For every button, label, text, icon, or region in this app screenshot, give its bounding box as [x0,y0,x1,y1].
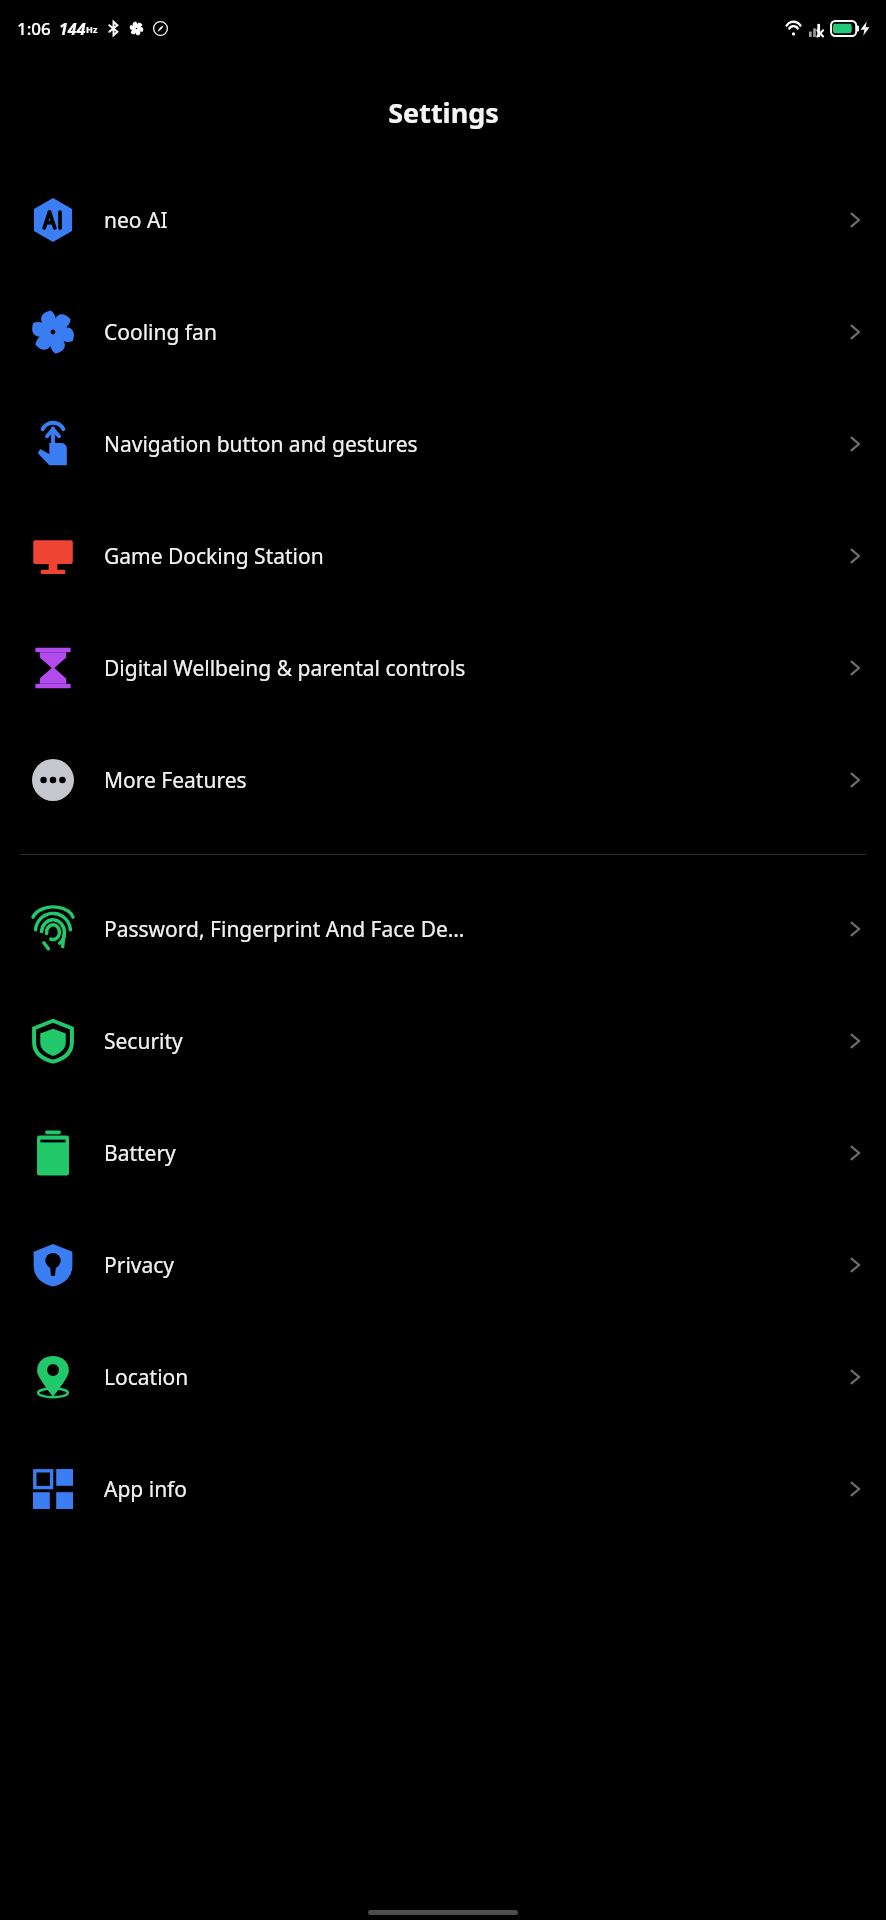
staticText: Battery [104,1139,834,1168]
staticText: Digital Wellbeing & parental controls [104,654,834,683]
other: Open Privacy [844,1254,866,1276]
button[interactable]: Navigation button and gestures [0,388,886,500]
staticText: Hz [86,23,98,35]
staticText: 1:06 [17,17,51,40]
staticText: Privacy [104,1251,834,1280]
other: Open Password, Fingerprint And Face De… [844,918,866,940]
other: Open More Features [844,769,866,791]
other: Open neo AI [844,209,866,231]
button[interactable]: App info [0,1433,886,1545]
staticText: Game Docking Station [104,542,834,571]
other: Open Cooling fan [844,321,866,343]
button[interactable]: Game Docking Station [0,500,886,612]
button[interactable]: Digital Wellbeing & parental controls [0,612,886,724]
other: Open Game Docking Station [844,545,866,567]
other: Open App info [844,1478,866,1500]
staticText: Navigation button and gestures [104,430,834,459]
button[interactable]: Security [0,985,886,1097]
staticText: 144 [59,18,86,40]
button[interactable]: Password, Fingerprint And Face De… [0,873,886,985]
other: Open Navigation button and gestures [844,433,866,455]
button[interactable]: More Features [0,724,886,836]
staticText: Settings [388,94,499,131]
staticText: Security [104,1027,834,1056]
staticText: App info [104,1475,834,1504]
staticText: More Features [104,766,834,795]
other: Open Location [844,1366,866,1388]
button[interactable]: neo AI [0,164,886,276]
button[interactable]: Battery [0,1097,886,1209]
button[interactable]: Cooling fan [0,276,886,388]
button[interactable]: Privacy [0,1209,886,1321]
staticText: Password, Fingerprint And Face De… [104,915,834,944]
other: Open Battery [844,1142,866,1164]
other: Open Security [844,1030,866,1052]
button[interactable]: Location [0,1321,886,1433]
staticText: neo AI [104,206,834,235]
other: Open Digital Wellbeing & parental contro… [844,657,866,679]
staticText: Location [104,1363,834,1392]
staticText: Cooling fan [104,318,834,347]
